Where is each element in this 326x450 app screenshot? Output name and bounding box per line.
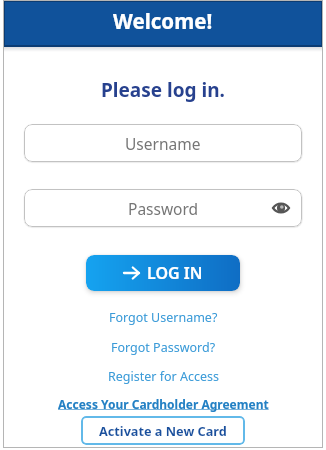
staticText: Please log in.: [101, 77, 225, 103]
button[interactable]: Password: [24, 189, 302, 227]
button[interactable]: LOG IN: [86, 255, 240, 291]
button[interactable]: Register for Access: [108, 368, 219, 385]
staticText: Activate a New Card: [99, 422, 227, 439]
button[interactable]: Username: [24, 124, 302, 162]
button[interactable]: [273, 202, 289, 214]
button[interactable]: Activate a New Card: [81, 416, 245, 445]
staticText: Password: [128, 198, 199, 219]
staticText: Username: [125, 133, 201, 154]
button[interactable]: Access Your Cardholder Agreement: [58, 396, 269, 412]
staticText: LOG IN: [147, 262, 203, 284]
staticText: Welcome!: [113, 7, 213, 35]
button[interactable]: Forgot Username?: [109, 309, 218, 326]
button[interactable]: Forgot Password?: [111, 339, 216, 356]
